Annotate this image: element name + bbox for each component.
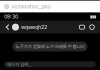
button[interactable]: Video call [77,21,87,34]
staticText: wqweqh22 [21,24,47,30]
button[interactable]: Back [3,21,12,34]
staticText: 메시지 입력... [7,61,31,68]
staticText: victimofmr_pho [11,3,50,10]
staticText: 09:30 [4,13,18,20]
button[interactable]: Voice call [87,21,97,34]
staticText: ▮▮▮ [90,14,96,19]
staticText: 누군가가 검열에 누가 아래를 안 합니다 [15,43,84,50]
